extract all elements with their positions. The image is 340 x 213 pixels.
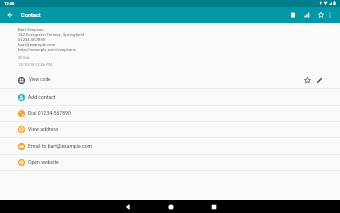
button[interactable]: Favorite (314, 8, 328, 22)
button[interactable]: Copy (286, 8, 300, 22)
button[interactable]: Dial 01234-567890 (0, 105, 340, 121)
staticText: Dial 01234-567890 (28, 110, 71, 116)
button[interactable]: Back (5, 10, 15, 20)
staticText: 12:36 (4, 1, 15, 6)
button[interactable]: Chart (300, 8, 314, 22)
staticText: Email to bart@example.com (28, 143, 93, 149)
staticText: QR Code (18, 56, 30, 60)
button[interactable]: Back (121, 200, 134, 213)
staticText: Contact (21, 12, 41, 19)
button[interactable]: Add contact (0, 89, 340, 105)
staticText: Open website (28, 159, 59, 165)
button[interactable]: Home (164, 200, 177, 213)
staticText: Add contact (28, 94, 56, 100)
staticText: Bart Simpson 742 Evergreen Terrace, Spri… (18, 27, 84, 52)
button[interactable]: Email to bart@example.com (0, 138, 340, 154)
button[interactable]: Recent apps (207, 200, 220, 213)
staticText: View address (28, 126, 59, 132)
button[interactable]: Open website (0, 154, 340, 170)
staticText: View code (29, 77, 51, 83)
button[interactable]: Favorite (301, 74, 313, 86)
button[interactable]: Edit (313, 74, 325, 86)
button[interactable]: More options (323, 8, 337, 22)
button[interactable]: View address (0, 121, 340, 137)
staticText: 12/10/18 12:36 PM (18, 62, 52, 67)
button[interactable]: View code (0, 71, 340, 89)
